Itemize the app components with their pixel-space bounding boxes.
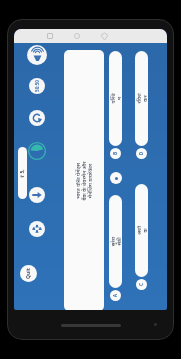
staticText: पश्चिम बंगाल सरकार सुरेश	[109, 92, 122, 105]
button[interactable]: Back	[101, 33, 108, 40]
staticText: C	[138, 279, 145, 290]
button[interactable]: Home	[74, 33, 80, 39]
staticText: B	[112, 148, 119, 159]
button[interactable]: Timer	[27, 141, 47, 161]
staticText: D	[138, 148, 145, 159]
button[interactable]: अशोक बिहारी वर्मा	[135, 184, 148, 290]
staticText: 50:50	[34, 78, 40, 94]
staticText: रविशंकर सिंह	[135, 92, 148, 105]
button[interactable]: Recents	[47, 33, 53, 39]
staticText: अशोक बिहारी वर्मा	[135, 224, 148, 237]
staticText: भारत पोस्ट पेमेंट्स बैंक के चेयरमैन और म…	[74, 161, 94, 201]
button[interactable]: पश्चिम बंगाल सरकार सुरेश	[109, 51, 122, 159]
button[interactable]: Hint	[110, 172, 122, 184]
staticText: Quit	[25, 265, 32, 282]
staticText: A	[112, 290, 119, 301]
button[interactable]: Audience poll	[29, 221, 45, 237]
staticText: सुरेश सेठी विनोद कुमार यादव	[109, 235, 122, 248]
button[interactable]: रविशंकर सिंह	[135, 51, 148, 159]
staticText: ₹ 5,000	[19, 169, 26, 178]
button[interactable]: Quit	[20, 265, 37, 282]
button[interactable]: सुरेश सेठी विनोद कुमार यादव	[109, 195, 122, 301]
button[interactable]: ₹ 5,000	[18, 147, 27, 199]
button[interactable]: Skip question	[29, 187, 45, 203]
button[interactable]: भारत पोस्ट पेमेंट्स बैंक के चेयरमैन और म…	[64, 50, 104, 310]
button[interactable]: Flip question	[29, 110, 45, 126]
button[interactable]: Fifty fifty	[29, 78, 45, 94]
button[interactable]: Expert advice	[27, 45, 47, 65]
